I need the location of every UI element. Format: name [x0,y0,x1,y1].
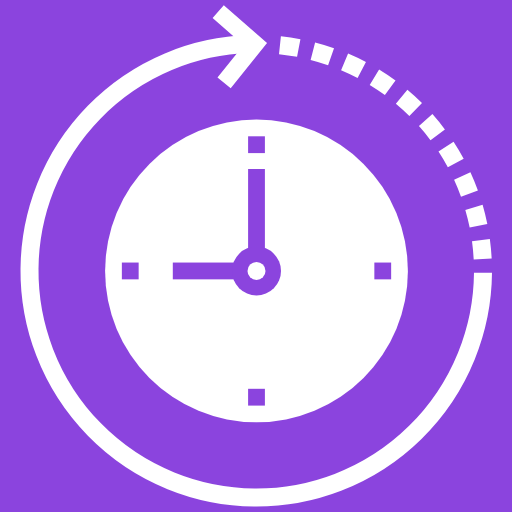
button[interactable]: Time tracker [0,0,512,512]
